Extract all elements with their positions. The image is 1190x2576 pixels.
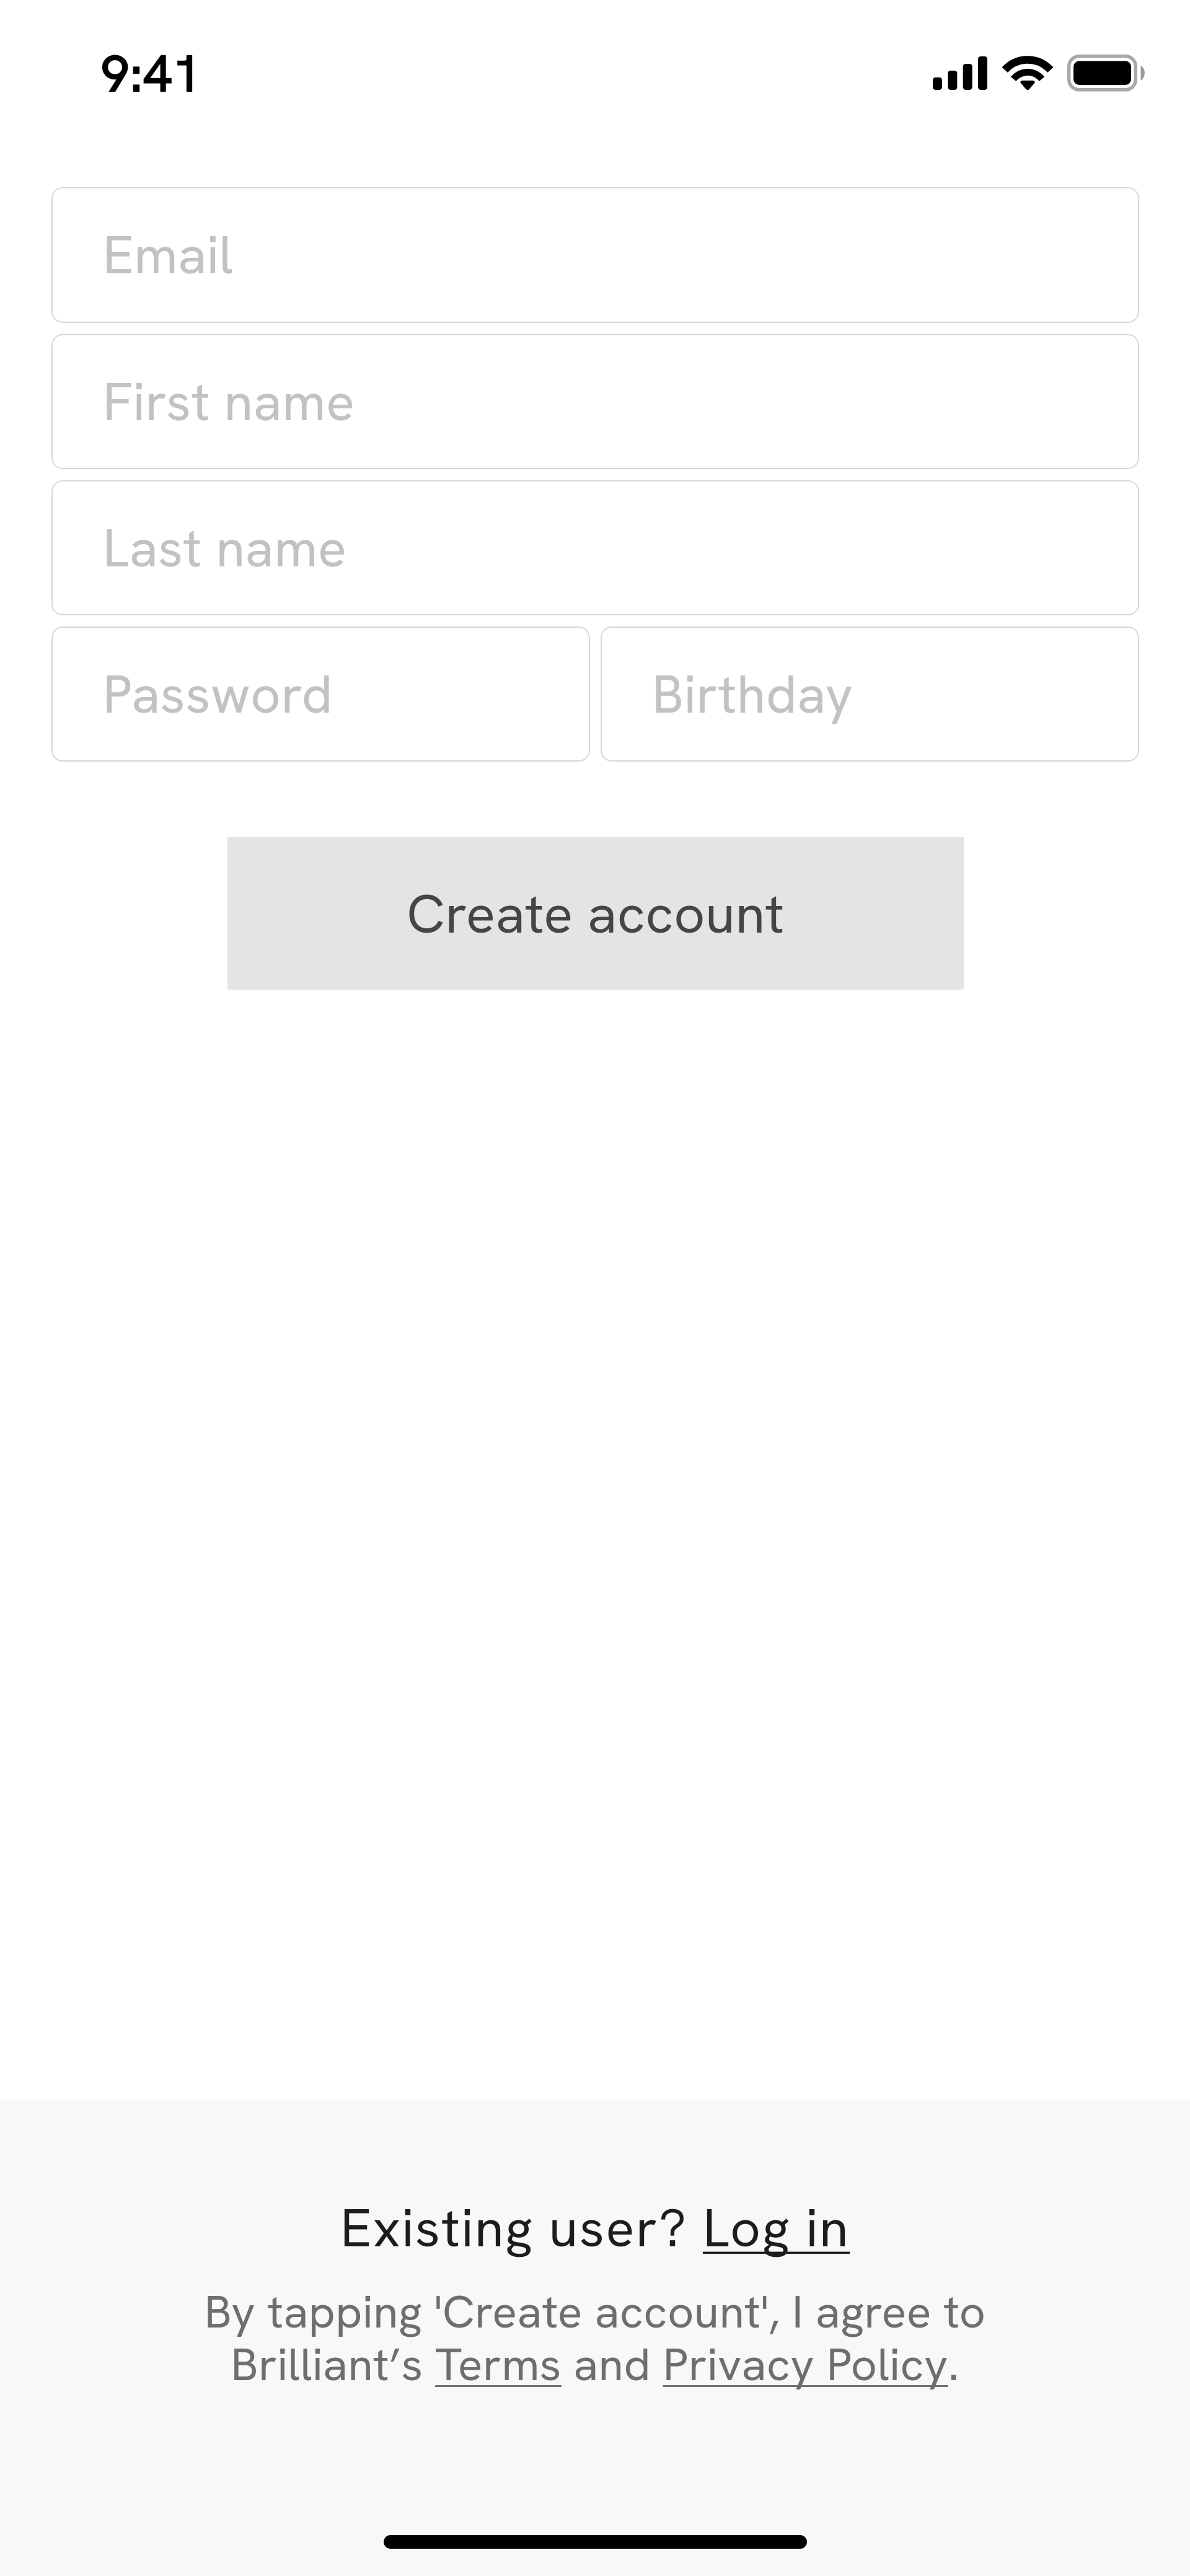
button[interactable]: By tapping 'Create account', I agree to … xyxy=(204,2282,986,2394)
staticText: First name xyxy=(103,367,355,436)
button[interactable]: Log in xyxy=(703,2193,850,2262)
other: Home indicator xyxy=(384,2535,807,2549)
staticText: 9:41 xyxy=(101,41,202,107)
button[interactable]: First name xyxy=(51,334,1139,469)
button[interactable]: Last name xyxy=(51,480,1139,615)
staticText: Email xyxy=(103,221,234,289)
staticText: Existing user? xyxy=(340,2193,703,2262)
staticText: Birthday xyxy=(652,660,853,729)
staticText: Create account xyxy=(407,878,785,949)
other: Battery full xyxy=(1067,55,1147,93)
staticText: By tapping 'Create account', I agree to … xyxy=(204,2282,986,2394)
other: Cellular signal strength xyxy=(933,53,987,90)
button[interactable]: Password xyxy=(51,626,590,762)
staticText: Last name xyxy=(103,514,347,582)
button[interactable]: Create account xyxy=(227,837,964,990)
other: Wi-Fi xyxy=(1003,55,1052,90)
button[interactable]: Birthday xyxy=(601,626,1139,762)
button[interactable]: Email xyxy=(51,187,1139,323)
staticText: Log in xyxy=(703,2193,850,2262)
staticText: Password xyxy=(103,660,333,729)
